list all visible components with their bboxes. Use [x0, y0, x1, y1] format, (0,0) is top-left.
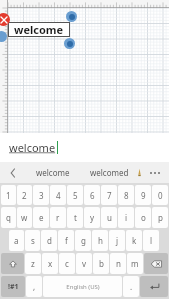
- staticText: y: [90, 212, 95, 223]
- staticText: j: [116, 235, 119, 246]
- staticText: w: [21, 212, 28, 223]
- button[interactable]: h: [92, 230, 108, 251]
- staticText: l: [150, 235, 153, 246]
- button[interactable]: d: [41, 230, 57, 251]
- button[interactable]: y: [84, 207, 100, 228]
- staticText: welcomed: [90, 167, 129, 178]
- button[interactable]: Handle: [0, 31, 7, 42]
- button[interactable]: x: [42, 253, 58, 274]
- button[interactable]: Resize: [64, 38, 75, 49]
- button[interactable]: !#1: [1, 276, 25, 297]
- button[interactable]: 3: [33, 185, 49, 205]
- button[interactable]: p: [152, 207, 168, 228]
- staticText: 2: [22, 190, 27, 201]
- button[interactable]: l: [143, 230, 159, 251]
- button[interactable]: i: [118, 207, 134, 228]
- staticText: 4: [56, 190, 61, 201]
- button[interactable]: 2: [17, 185, 32, 205]
- button[interactable]: 7: [101, 185, 117, 205]
- button[interactable]: a: [9, 230, 24, 251]
- button[interactable]: s: [25, 230, 40, 251]
- staticText: g: [81, 235, 86, 246]
- staticText: z: [31, 258, 35, 269]
- staticText: welcome: [9, 140, 56, 155]
- button[interactable]: 4: [50, 185, 66, 205]
- staticText: 9: [141, 190, 146, 201]
- button[interactable]: n: [110, 253, 126, 274]
- button[interactable]: t: [67, 207, 83, 228]
- button[interactable]: w: [17, 207, 32, 228]
- staticText: .: [130, 281, 133, 292]
- staticText: ,: [33, 281, 36, 292]
- staticText: e: [39, 212, 44, 223]
- staticText: f: [65, 235, 68, 246]
- staticText: n: [116, 258, 121, 269]
- staticText: h: [98, 235, 103, 246]
- staticText: s: [31, 235, 35, 246]
- staticText: a: [14, 235, 19, 246]
- button[interactable]: Backspace: [144, 253, 168, 274]
- button[interactable]: 8: [118, 185, 134, 205]
- button[interactable]: g: [75, 230, 91, 251]
- staticText: r: [56, 212, 60, 223]
- staticText: m: [131, 258, 139, 269]
- button[interactable]: z: [25, 253, 41, 274]
- staticText: !#1: [8, 282, 19, 292]
- button[interactable]: 1: [1, 185, 16, 205]
- button[interactable]: v: [76, 253, 92, 274]
- button[interactable]: Shift: [1, 253, 24, 274]
- button[interactable]: .: [123, 276, 139, 297]
- button[interactable]: welcomed: [80, 162, 138, 183]
- staticText: 7: [107, 190, 112, 201]
- button[interactable]: Enter: [140, 276, 168, 297]
- button[interactable]: o: [135, 207, 151, 228]
- button[interactable]: c: [59, 253, 75, 274]
- button[interactable]: 0: [152, 185, 168, 205]
- button[interactable]: b: [93, 253, 109, 274]
- button[interactable]: e: [33, 207, 49, 228]
- button[interactable]: f: [58, 230, 74, 251]
- button[interactable]: Delete: [0, 13, 10, 26]
- staticText: welcome: [36, 167, 70, 178]
- staticText: v: [82, 258, 87, 269]
- button[interactable]: u: [101, 207, 117, 228]
- button[interactable]: r: [50, 207, 66, 228]
- staticText: 0: [158, 190, 163, 201]
- staticText: 1: [6, 190, 11, 201]
- staticText: q: [6, 212, 11, 223]
- staticText: u: [107, 212, 112, 223]
- staticText: d: [47, 235, 52, 246]
- staticText: English (US): [66, 283, 100, 291]
- staticText: welcome: [14, 22, 64, 37]
- button[interactable]: Keyboard settings: [138, 162, 141, 183]
- button[interactable]: 5: [67, 185, 83, 205]
- staticText: o: [141, 212, 146, 223]
- button[interactable]: English (US): [43, 276, 122, 297]
- staticText: 3: [39, 190, 44, 201]
- button[interactable]: Rotate: [66, 11, 77, 22]
- staticText: p: [158, 212, 163, 223]
- staticText: i: [125, 212, 128, 223]
- button[interactable]: 9: [135, 185, 151, 205]
- button[interactable]: Previous suggestions: [0, 162, 26, 183]
- staticText: t: [74, 212, 77, 223]
- button[interactable]: ,: [26, 276, 42, 297]
- staticText: 6: [90, 190, 95, 201]
- staticText: x: [48, 258, 53, 269]
- button[interactable]: k: [126, 230, 142, 251]
- button[interactable]: More options: [141, 162, 169, 183]
- button[interactable]: welcome: [8, 22, 70, 37]
- button[interactable]: welcome: [0, 133, 169, 162]
- staticText: b: [99, 258, 104, 269]
- button[interactable]: welcome: [26, 162, 80, 183]
- staticText: 5: [73, 190, 78, 201]
- staticText: k: [132, 235, 137, 246]
- staticText: 8: [124, 190, 129, 201]
- button[interactable]: q: [1, 207, 16, 228]
- staticText: c: [65, 258, 69, 269]
- button[interactable]: j: [109, 230, 125, 251]
- button[interactable]: m: [127, 253, 143, 274]
- button[interactable]: 6: [84, 185, 100, 205]
